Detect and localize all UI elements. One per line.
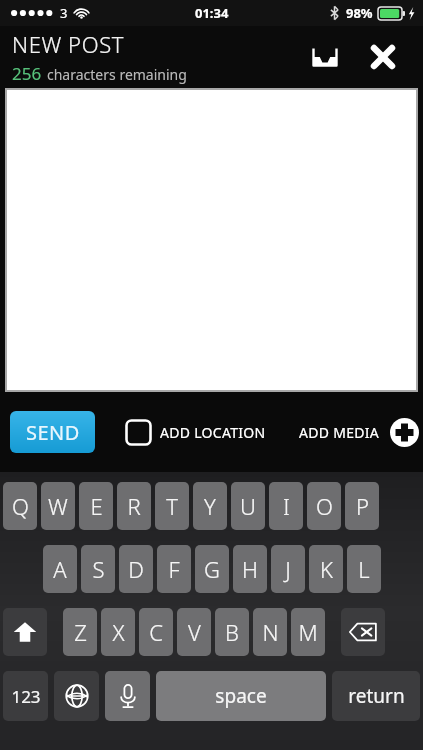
staticText: J (285, 554, 291, 584)
button[interactable]: U (231, 482, 265, 530)
staticText: NEW POST (12, 29, 125, 59)
staticText: H (242, 554, 258, 584)
staticText: Z (74, 617, 87, 647)
staticText: C (149, 617, 163, 647)
staticText: K (320, 554, 333, 584)
staticText: SEND (26, 419, 80, 446)
button[interactable]: Shift (3, 608, 47, 656)
staticText: 98% (346, 4, 373, 22)
button[interactable]: Change keyboard (54, 671, 99, 721)
button[interactable]: H (233, 545, 267, 593)
button[interactable]: return (332, 671, 420, 721)
button[interactable]: C (139, 608, 173, 656)
button[interactable]: K (309, 545, 343, 593)
button[interactable]: Y (193, 482, 227, 530)
staticText: G (204, 554, 220, 584)
staticText: W (48, 491, 68, 521)
button[interactable]: V (177, 608, 211, 656)
button[interactable]: P (345, 482, 379, 530)
button[interactable]: O (307, 482, 341, 530)
staticText: O (316, 491, 333, 521)
button[interactable]: SEND (10, 411, 95, 453)
staticText: F (168, 554, 180, 584)
button[interactable]: T (155, 482, 189, 530)
staticText: Y (204, 491, 216, 521)
button[interactable]: W (41, 482, 75, 530)
button[interactable]: Close (361, 35, 405, 79)
button[interactable]: I (269, 482, 303, 530)
button[interactable]: X (101, 608, 135, 656)
button[interactable]: E (79, 482, 113, 530)
button[interactable]: Delete (341, 608, 385, 656)
button[interactable]: G (195, 545, 229, 593)
staticText: V (188, 617, 201, 647)
button[interactable]: D (119, 545, 153, 593)
button[interactable]: B (215, 608, 249, 656)
staticText: S (92, 554, 105, 584)
staticText: 256 (12, 62, 42, 85)
staticText: space (215, 683, 267, 709)
button[interactable]: ADD LOCATION (125, 419, 266, 446)
staticText: A (53, 554, 67, 584)
button[interactable]: M (291, 608, 325, 656)
staticText: 01:34 (195, 4, 229, 22)
button[interactable]: ADD MEDIA (299, 418, 419, 447)
staticText: ADD LOCATION (160, 423, 266, 442)
staticText: U (240, 491, 256, 521)
staticText: P (356, 491, 369, 521)
button[interactable]: 123 (3, 671, 48, 721)
button[interactable]: J (271, 545, 305, 593)
button[interactable]: space (156, 671, 326, 721)
staticText: N (262, 617, 279, 647)
staticText: Q (12, 491, 29, 521)
button[interactable]: N (253, 608, 287, 656)
button[interactable]: Drafts (303, 35, 347, 79)
button[interactable]: R (117, 482, 151, 530)
button[interactable]: Z (63, 608, 97, 656)
staticText: D (128, 554, 144, 584)
staticText: M (298, 617, 318, 647)
button[interactable]: S (81, 545, 115, 593)
staticText: ADD MEDIA (299, 423, 380, 442)
button[interactable]: Q (3, 482, 37, 530)
staticText: 3 (60, 4, 68, 22)
button[interactable]: F (157, 545, 191, 593)
button[interactable]: A (43, 545, 77, 593)
staticText: L (358, 554, 370, 584)
button[interactable]: Dictate (105, 671, 150, 721)
staticText: characters remaining (47, 65, 187, 84)
staticText: I (283, 491, 290, 521)
staticText: X (112, 617, 125, 647)
staticText: R (127, 491, 141, 521)
staticText: 123 (11, 685, 41, 708)
staticText: return (348, 683, 405, 709)
staticText: B (225, 617, 239, 647)
staticText: T (166, 491, 178, 521)
staticText: E (90, 491, 103, 521)
button[interactable]: L (347, 545, 381, 593)
